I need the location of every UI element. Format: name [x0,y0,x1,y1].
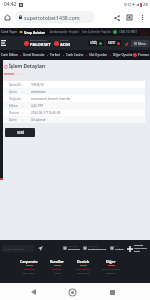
staticText: Doğrulama [9,97,22,101]
staticText: Diğer Oyunlar [113,53,133,57]
button[interactable]: Diğer [106,259,116,264]
staticText: Promosyonlar [138,53,149,57]
staticText: BONUSLAR [68,248,80,251]
button[interactable]: More options [136,11,149,24]
staticText: KAYIT [108,41,116,45]
staticText: 04:42 [4,1,17,8]
staticText: Paribet [50,53,61,57]
button[interactable]: Home [1,11,14,24]
button[interactable]: Share [110,11,123,24]
staticText: : [22,118,23,122]
staticText: İşlem ID [9,83,22,87]
staticText: : [22,90,23,94]
staticText: +18 [115,245,119,248]
staticText: : [22,83,23,87]
staticText: withdrawn [31,90,46,94]
staticText: BAHİS/ORANLAR [88,248,107,251]
staticText: GERİ [17,131,24,135]
staticText: supertotobet1438.com [24,14,80,21]
staticText: Bize Ulaşın [23,272,35,275]
staticText: Ambassador [50,30,68,34]
button[interactable]: GERİ [5,128,35,137]
staticText: Kullanım [52,268,62,271]
staticText: Para Yatırma [76,268,90,271]
button[interactable]: Menu [131,40,149,47]
staticText: : [22,111,23,115]
button[interactable]: supertotobet1438.com [15,11,95,23]
staticText: 4,66 TRY [31,104,43,108]
button[interactable]: GİRİŞ [90,41,102,45]
staticText: Slot Oyunları [89,53,108,57]
button[interactable]: +18 [110,245,124,251]
staticText: RESMİ SPONSORU [30,39,47,42]
button[interactable]: Recents [104,284,120,300]
staticText: 2024-08-27T16:45:08 [31,111,61,115]
button[interactable]: Back [25,284,41,300]
button[interactable]: E-posta adresiniz [4,245,32,252]
staticText: Diğer [106,259,116,264]
staticText: Onaylandı [31,118,46,122]
staticText: İNDİR [134,250,140,253]
staticText: Grup Aviator [24,30,46,34]
staticText: ANDROİD [134,244,144,247]
button[interactable]: KAYIT [108,41,120,45]
staticText: 7/24 CANLI [68,245,78,248]
staticText: 7/24 CANLI [88,245,98,248]
staticText: Son Çekimler Yapıldı [82,30,111,34]
staticText: 99636,93 [31,83,44,87]
button[interactable]: Tabs [123,11,136,24]
button[interactable]: Subscribe [37,245,43,251]
staticText: Menu [138,42,146,46]
staticText: ADM [60,42,70,48]
button[interactable]: 7/24 CANLI [63,245,80,251]
staticText: : [22,104,23,108]
button[interactable]: Kurallar [50,259,64,264]
button[interactable]: Home [64,284,80,300]
staticText: İşlem Durumu [9,118,22,122]
button[interactable]: Destek [77,259,90,264]
staticText: Haydın [69,30,79,34]
staticText: Destek [77,259,90,264]
staticText: Canlı Yayın [1,30,18,34]
staticText: Genel Bonuslar [23,53,45,57]
staticText: Corporate [20,259,38,264]
staticText: Durum [9,111,22,115]
staticText: Canlı Bülten [1,53,18,57]
staticText: İşlem Tipi [9,90,22,94]
staticText: Mobil Uygulama [102,268,120,271]
staticText: Canlı Casino [66,53,84,57]
button[interactable]: 7/24 CANLI [83,245,107,251]
staticText: Güvenlik [106,272,116,275]
staticText: İşlem Detayları [9,63,46,70]
staticText: Para Çekme [77,272,90,275]
staticText: E-posta adresiniz [4,247,24,250]
staticText: PARTNER [60,39,69,42]
staticText: 28 [143,2,148,8]
staticText: Hakkımızda [23,268,36,271]
staticText: Miktar [9,104,22,108]
staticText: UYGULAMAYI [134,247,147,250]
staticText: transaction_branch_transfer [31,97,71,101]
staticText: PALOKSET [30,42,51,48]
staticText: CASİNO [115,248,124,251]
staticText: CANLI SOHBET [119,30,138,34]
button[interactable]: ANDROİD [127,244,147,253]
button[interactable]: Corporate [20,259,38,264]
staticText: Gizlilik [54,272,61,275]
staticText: : [22,97,23,101]
staticText: GİRİŞ [90,41,98,45]
staticText: Kurallar [50,259,64,264]
